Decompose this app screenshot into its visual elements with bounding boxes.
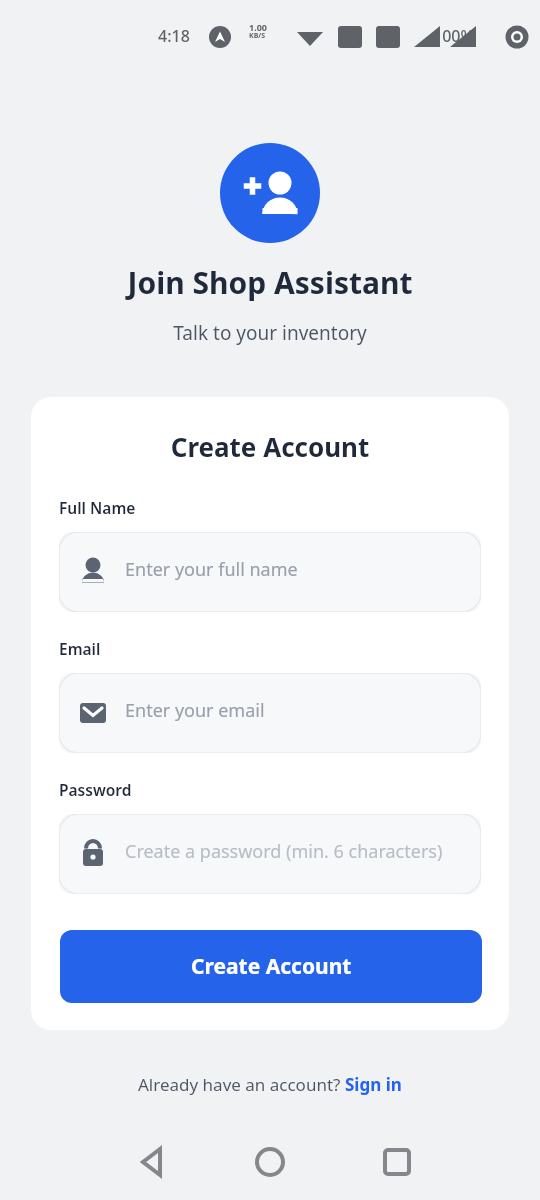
- staticText: Enter your full name: [125, 557, 298, 582]
- staticText: Password: [59, 779, 132, 800]
- staticText: Email: [59, 638, 101, 659]
- button[interactable]: Create a password (min. 6 characters): [59, 814, 481, 894]
- staticText: Join Shop Assistant: [0, 262, 540, 303]
- button[interactable]: Home: [246, 1138, 294, 1186]
- other: Add account: [220, 143, 320, 243]
- staticText: Already have an account?: [138, 1073, 345, 1096]
- button[interactable]: Create Account: [60, 930, 482, 1003]
- button[interactable]: Recents: [373, 1138, 421, 1186]
- staticText: Enter your email: [125, 698, 265, 723]
- staticText: Sign in: [345, 1073, 402, 1096]
- staticText: Create a password (min. 6 characters): [125, 839, 443, 864]
- staticText: Create Account: [191, 952, 352, 981]
- staticText: 100%: [433, 25, 475, 47]
- button[interactable]: Enter your email: [59, 673, 481, 753]
- staticText: 4:18: [158, 25, 190, 47]
- button[interactable]: Sign in: [345, 1073, 402, 1096]
- button[interactable]: Back: [128, 1138, 176, 1186]
- staticText: Full Name: [59, 497, 136, 518]
- staticText: KB/S: [249, 31, 266, 41]
- staticText: 1.00: [249, 21, 267, 33]
- staticText: Talk to your inventory: [0, 320, 540, 346]
- staticText: Create Account: [31, 429, 509, 464]
- button[interactable]: Enter your full name: [59, 532, 481, 612]
